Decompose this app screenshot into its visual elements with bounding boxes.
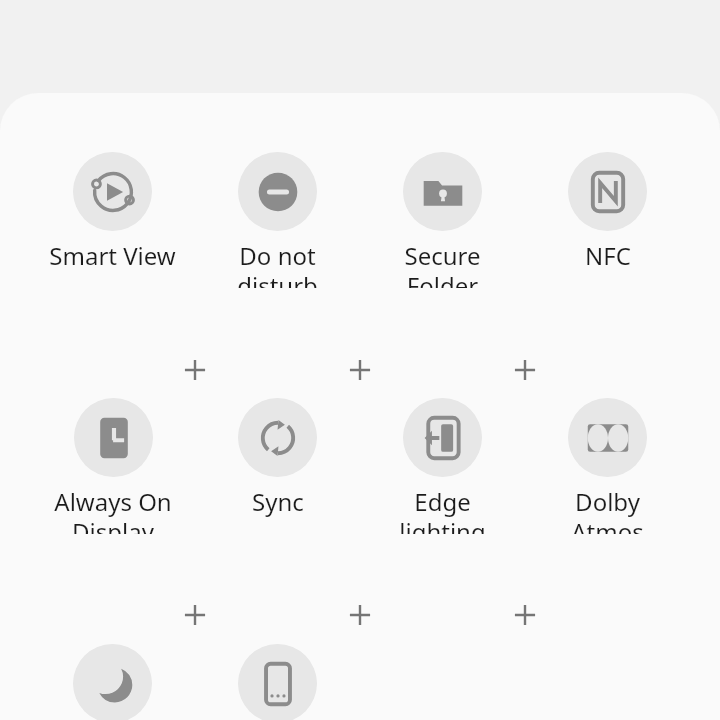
staticText: Do not disturb <box>237 239 318 288</box>
staticText: Smart View <box>49 239 176 272</box>
staticText: NFC <box>585 239 631 272</box>
staticText: Edge lighting <box>399 485 486 534</box>
button[interactable]: Always On Display <box>30 386 195 534</box>
button[interactable]: Dolby Atmos <box>525 386 690 534</box>
staticText: Dolby Atmos <box>571 485 644 534</box>
button[interactable]: Night mode <box>30 632 195 720</box>
button[interactable]: Do not disturb <box>195 140 360 288</box>
button[interactable]: Smart View <box>30 140 195 288</box>
staticText: Sync <box>252 485 304 518</box>
button[interactable]: NFC <box>525 140 690 288</box>
button[interactable]: Secure Folder <box>360 140 525 288</box>
button[interactable]: Sync <box>195 386 360 534</box>
staticText: Always On Display <box>54 485 172 534</box>
button[interactable]: Edge lighting <box>360 386 525 534</box>
button[interactable]: Device options <box>195 632 360 720</box>
staticText: Secure Folder <box>404 239 481 288</box>
